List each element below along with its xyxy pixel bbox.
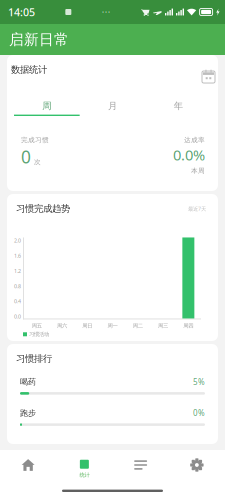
button[interactable]: 设置 — [169, 454, 225, 484]
button[interactable]: 年 — [145, 97, 211, 116]
button[interactable]: 日历 — [202, 70, 215, 84]
staticText: 0.4 — [14, 298, 21, 305]
staticText: 周 — [42, 100, 51, 112]
staticText: 月 — [108, 100, 117, 112]
staticText: 周一 — [107, 322, 117, 329]
button[interactable]: 周 — [14, 97, 80, 116]
staticText: 14:05 — [8, 5, 35, 19]
staticText: 0% — [193, 408, 205, 418]
staticText: 周二 — [133, 322, 143, 329]
staticText: 喝药 — [20, 377, 36, 387]
staticText: 习惯活动 — [29, 331, 49, 338]
staticText: 周四 — [183, 322, 193, 329]
staticText: ··· — [102, 6, 111, 18]
staticText: 完成习惯 — [21, 136, 49, 144]
staticText: 最近7天 — [188, 205, 206, 212]
staticText: 2.0 — [14, 237, 21, 244]
staticText: 0.8 — [14, 282, 21, 290]
staticText: 5% — [193, 376, 205, 387]
staticText: 数据统计 — [11, 64, 47, 75]
staticText: 0 — [21, 145, 31, 168]
staticText: 跑步 — [20, 408, 36, 418]
staticText: 周五 — [32, 322, 42, 329]
staticText: 启新日常 — [9, 30, 69, 48]
staticText: 习惯排行 — [16, 353, 52, 364]
button[interactable]: 月 — [80, 97, 145, 116]
staticText: 本周 — [191, 167, 205, 175]
staticText: 周三 — [158, 322, 168, 329]
staticText: 周六 — [57, 322, 67, 329]
staticText: 统计 — [79, 472, 89, 478]
staticText: 习惯完成趋势 — [16, 203, 70, 214]
button[interactable]: 列表 — [112, 454, 169, 484]
staticText: 次 — [34, 158, 41, 166]
staticText: 1.6 — [14, 252, 21, 259]
staticText: 0.0% — [173, 145, 205, 165]
button[interactable]: 统计 — [56, 454, 112, 484]
staticText: 年 — [174, 100, 183, 112]
button[interactable]: 首页 — [0, 454, 56, 484]
staticText: 0.0 — [14, 313, 21, 320]
staticText: 达成率 — [184, 136, 205, 144]
staticText: 1.2 — [14, 267, 21, 274]
staticText: 周日 — [82, 322, 92, 329]
